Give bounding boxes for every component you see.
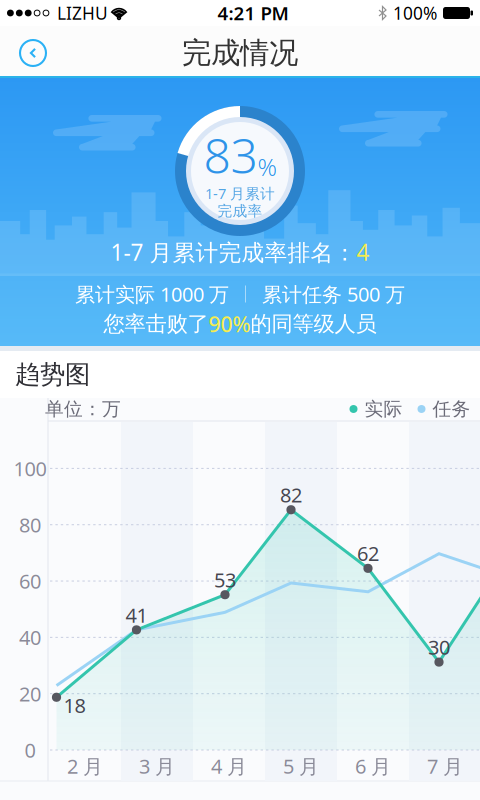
staticText: 您率击败了	[103, 311, 208, 337]
staticText: 累计实际 1000 万	[75, 281, 229, 307]
staticText: 实际	[364, 397, 402, 420]
staticText: 4:21 PM	[217, 1, 288, 25]
staticText: 62	[357, 540, 379, 567]
staticText: 30	[428, 634, 450, 660]
button[interactable]: Back	[9, 29, 57, 77]
staticText: 3 月	[139, 753, 175, 779]
staticText: 20	[19, 680, 41, 707]
staticText: 18	[63, 692, 85, 719]
staticText: 5 月	[283, 753, 319, 779]
staticText: 1-7 月累计完成率排名：	[110, 237, 356, 267]
staticText: 83	[203, 123, 257, 187]
staticText: 的同等级人员	[250, 311, 376, 337]
staticText: 7 月	[427, 753, 463, 779]
staticText: 趋势图	[15, 359, 90, 390]
staticText: 53	[214, 566, 236, 593]
staticText: 82	[280, 481, 302, 508]
staticText: 100	[13, 455, 46, 482]
staticText: 1-7 月累计	[205, 184, 275, 203]
staticText: LIZHU	[57, 1, 108, 24]
staticText: 40	[19, 624, 41, 651]
staticText: 41	[125, 602, 147, 628]
staticText: 6 月	[355, 753, 391, 779]
staticText: 60	[19, 568, 41, 594]
staticText: 任务	[432, 397, 470, 420]
staticText: 单位：万	[45, 397, 121, 420]
staticText: 2 月	[67, 753, 103, 779]
staticText: 完成情况	[182, 35, 298, 71]
staticText: %	[257, 151, 276, 183]
staticText: 100%	[393, 1, 437, 24]
staticText: 4	[356, 237, 369, 267]
staticText: 90%	[208, 310, 250, 338]
staticText: 4 月	[211, 753, 247, 779]
staticText: 累计任务 500 万	[262, 281, 405, 307]
staticText: 0	[24, 737, 35, 763]
staticText: 完成率	[217, 202, 262, 220]
staticText: 80	[19, 511, 41, 538]
